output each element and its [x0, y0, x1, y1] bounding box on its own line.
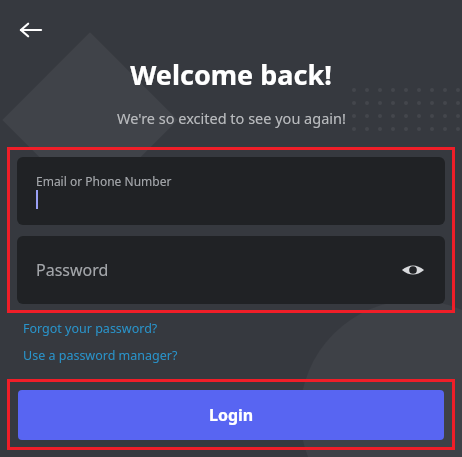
button[interactable]: Password: [17, 236, 445, 304]
button[interactable]: Forgot your password?: [17, 318, 164, 339]
button[interactable]: Back: [10, 9, 52, 51]
button[interactable]: Login: [18, 390, 444, 440]
staticText: Login: [209, 404, 254, 426]
staticText: Use a password manager?: [23, 347, 178, 364]
button[interactable]: Email or Phone Number: [17, 157, 445, 225]
staticText: Email or Phone Number: [36, 173, 172, 189]
staticText: Password: [36, 259, 109, 281]
staticText: We're so excited to see you again!: [117, 108, 346, 128]
staticText: Forgot your password?: [23, 320, 158, 337]
button[interactable]: Show password: [395, 252, 431, 288]
staticText: Welcome back!: [130, 56, 332, 93]
button[interactable]: Use a password manager?: [17, 345, 184, 366]
